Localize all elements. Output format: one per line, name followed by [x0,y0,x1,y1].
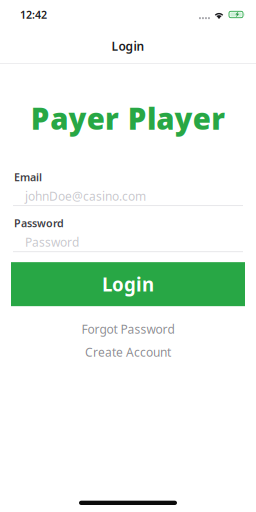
staticText: 12:42 [20,7,47,22]
staticText: Forgot Password [81,321,174,337]
staticText: Payer Player [31,99,225,138]
staticText: Password [14,216,64,230]
staticText: Login [102,272,154,297]
button[interactable]: Password [11,234,245,252]
button[interactable]: Login [11,262,245,306]
staticText: Email [14,170,42,184]
button[interactable]: Create Account [11,344,245,360]
staticText: johnDoe@casino.com [25,188,146,204]
button[interactable]: Forgot Password [11,321,245,337]
navigationBar: Login [0,29,256,64]
staticText: Create Account [85,344,171,360]
staticText: Password [25,234,79,250]
button[interactable]: Email [11,188,245,206]
staticText: Login [111,38,144,54]
